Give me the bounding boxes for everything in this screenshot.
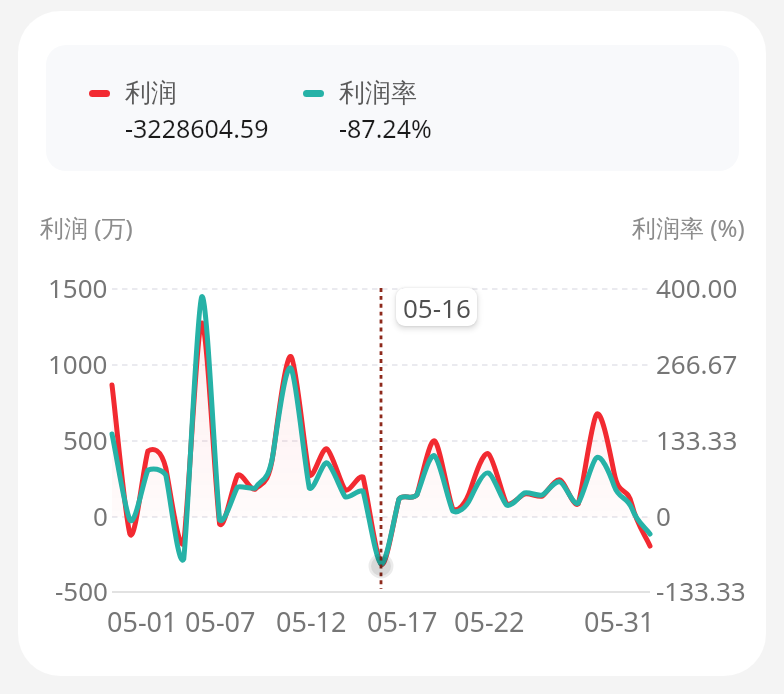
staticText: 05-12 [276,603,347,637]
staticText: 利润 (万) [40,211,133,244]
staticText: 05-31 [584,603,655,637]
button[interactable]: 利润 [46,45,739,171]
button[interactable]: 05-16 [396,288,477,326]
staticText: 05-17 [367,603,438,637]
staticText: 266.67 [656,346,738,381]
staticText: 500 [63,422,108,457]
staticText: -87.24% [339,111,432,145]
button[interactable]: 利润 [89,77,254,145]
staticText: 1000 [48,346,108,381]
staticText: 133.33 [656,422,738,457]
staticText: 05-01 [107,603,178,637]
staticText: 利润率 (%) [632,211,745,244]
staticText: 400.00 [656,270,738,305]
staticText: 05-16 [403,290,471,325]
staticText: -500 [55,573,108,608]
staticText: 05-22 [454,603,525,637]
staticText: 0 [93,498,108,533]
button[interactable]: 利润率 [303,77,417,145]
staticText: 1500 [48,270,108,305]
staticText: 0 [656,498,671,533]
staticText: 05-07 [185,603,256,637]
staticText: -3228604.59 [125,111,269,145]
other: 利润与利润率趋势图 [0,0,784,694]
staticText: -133.33 [656,573,746,608]
staticText: 利润 [125,77,177,110]
staticText: 利润率 [339,77,417,110]
